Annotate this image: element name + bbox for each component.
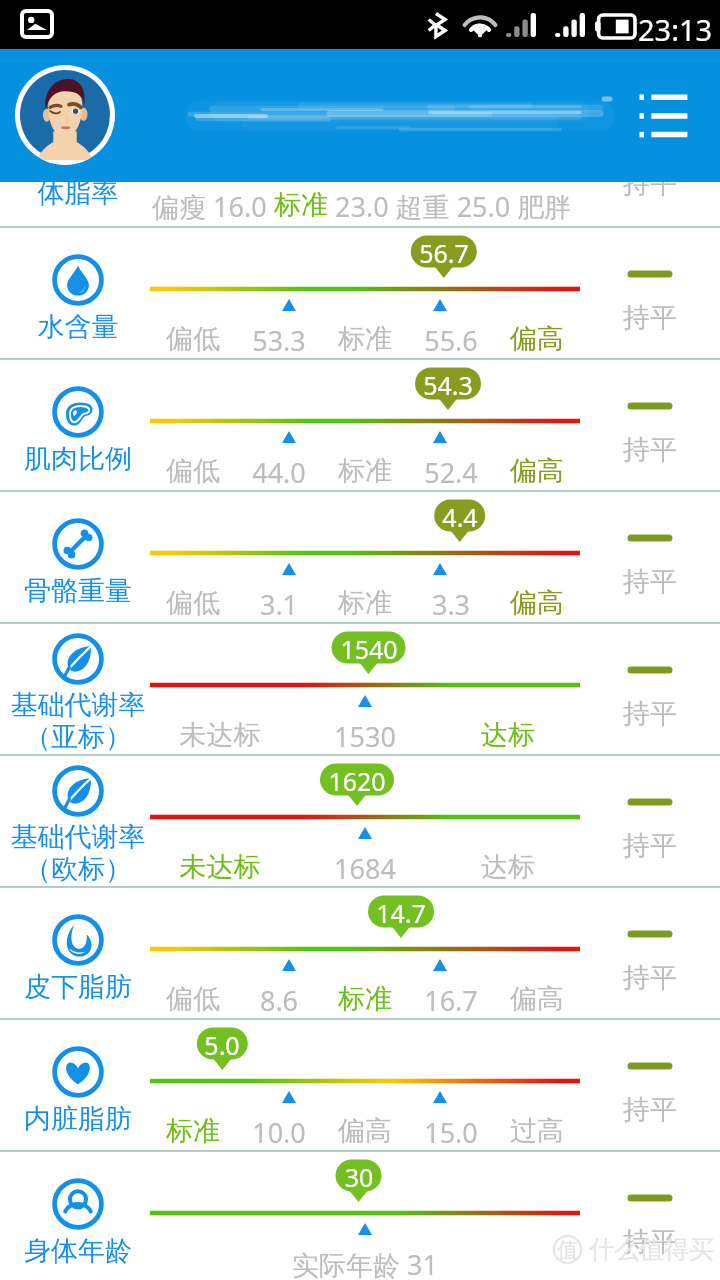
staticText: 偏高 [337,586,720,620]
staticText: 皮下脂肪 [0,970,278,1004]
staticText: 达标 [308,850,708,884]
staticText: 1540 [169,632,569,666]
staticText: 偏高 [165,1114,565,1148]
staticText: 16.7 [251,982,651,1019]
staticText: 基础代谢率 [0,820,278,854]
staticText: 1620 [157,764,557,798]
staticText: 3.3 [251,586,651,623]
button[interactable]: 骨骼重量 [0,492,720,624]
staticText: 23:13 [638,10,713,49]
staticText: 标准 [165,982,565,1016]
staticText: 持平 [450,167,720,201]
staticText: 过高 [337,1114,720,1148]
staticText: 偏低 [0,454,393,488]
staticText: 偏低 [0,586,393,620]
staticText: 30 [159,1160,559,1194]
staticText: 持平 [450,697,720,731]
button[interactable]: Profile [15,65,115,165]
staticText: 55.6 [251,322,651,359]
button[interactable]: 基础代谢率 [0,756,720,888]
staticText: 体脂率 [0,176,278,210]
staticText: 持平 [450,1093,720,1127]
button[interactable]: 水含量 [0,228,720,360]
staticText: 持平 [450,829,720,863]
staticText: 1684 [165,850,565,887]
staticText: （欧标） [0,852,278,886]
staticText: 44.0 [79,454,479,491]
staticText: 标准 [274,188,328,222]
staticText: 56.7 [244,236,644,270]
staticText: 什么值得买 [589,1234,714,1265]
staticText: 骨骼重量 [0,574,278,608]
staticText: 偏瘦 16.0 [152,188,274,225]
staticText: 未达标 [20,850,420,884]
staticText: 肌肉比例 [0,442,278,476]
staticText: 52.4 [251,454,651,491]
staticText: 标准 [165,454,565,488]
staticText: 持平 [450,565,720,599]
staticText: 偏高 [337,454,720,488]
button[interactable]: 内脏脂肪 [0,1020,720,1152]
staticText: 内脏脂肪 [0,1102,278,1136]
staticText: 8.6 [79,982,479,1019]
button[interactable]: Screenshot [20,8,54,42]
staticText: 1530 [165,718,565,755]
staticText: 未达标 [20,718,420,752]
button[interactable]: 皮下脂肪 [0,888,720,1020]
staticText: 基础代谢率 [0,688,278,722]
staticText: 持平 [450,961,720,995]
staticText: 偏高 [337,322,720,356]
staticText: 4.4 [260,500,660,534]
staticText: 偏低 [0,322,393,356]
staticText: 持平 [450,1225,720,1259]
staticText: 持平 [450,301,720,335]
staticText: （亚标） [0,720,278,754]
staticText: 14.7 [201,896,601,930]
staticText: 标准 [0,1114,393,1148]
staticText: 持平 [450,433,720,467]
staticText: 标准 [165,322,565,356]
staticText: 水含量 [0,310,278,344]
staticText: 偏低 [0,982,393,1016]
staticText: 达标 [308,718,708,752]
staticText: 3.1 [79,586,479,623]
staticText: 54.3 [248,368,648,402]
staticText: 值 [557,1237,578,1263]
staticText: 标准 [165,586,565,620]
staticText: 实际年龄 31 [165,1246,565,1280]
staticText: 53.3 [79,322,479,359]
staticText: 15.0 [251,1114,651,1151]
staticText: 偏高 [337,982,720,1016]
staticText: 10.0 [79,1114,479,1151]
staticText: 23.0 超重 25.0 肥胖 [328,188,572,225]
button[interactable]: 基础代谢率 [0,624,720,756]
staticText: 5.0 [22,1028,422,1062]
button[interactable]: 肌肉比例 [0,360,720,492]
staticText: 身体年龄 [0,1234,278,1268]
button[interactable]: 身体年龄 [0,1152,720,1280]
button[interactable]: Menu [630,85,696,147]
button[interactable]: 体脂率 [0,94,720,226]
